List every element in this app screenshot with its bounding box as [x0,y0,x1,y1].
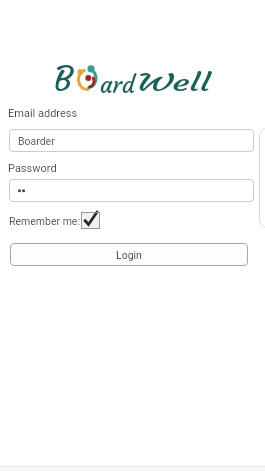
staticText: Remember me: [9,215,80,227]
staticText: Email address [8,107,78,120]
staticText: ard [100,71,135,100]
button[interactable]: Login [10,243,248,266]
button[interactable] [81,212,100,229]
button[interactable] [9,179,254,202]
staticText: B [54,59,73,100]
staticText: Password [8,162,57,175]
staticText: Boarder [18,135,55,147]
staticText: Well [137,68,211,98]
button[interactable]: Boarder [9,129,254,152]
staticText: Login [116,249,142,261]
